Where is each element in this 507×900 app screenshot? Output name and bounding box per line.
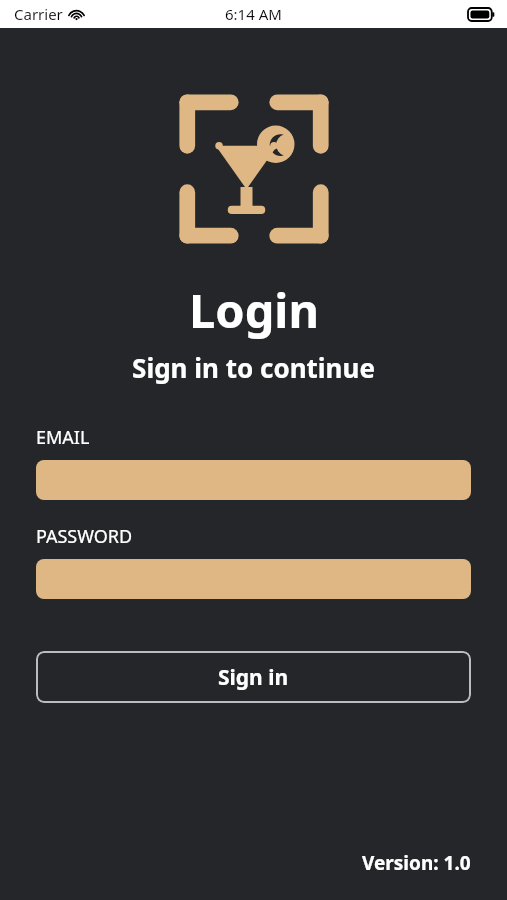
staticText: Sign in (218, 663, 289, 692)
button[interactable]: Sign in (36, 651, 471, 703)
staticText: Login (189, 278, 319, 342)
staticText: Version: 1.0 (362, 850, 471, 876)
staticText: Sign in to continue (132, 350, 375, 385)
button[interactable]: Password input field (36, 559, 471, 599)
button[interactable]: Email input field (36, 460, 471, 500)
staticText: Carrier (14, 4, 63, 24)
staticText: 6:14 AM (225, 4, 282, 24)
staticText: EMAIL (36, 425, 90, 450)
staticText: PASSWORD (36, 524, 133, 549)
